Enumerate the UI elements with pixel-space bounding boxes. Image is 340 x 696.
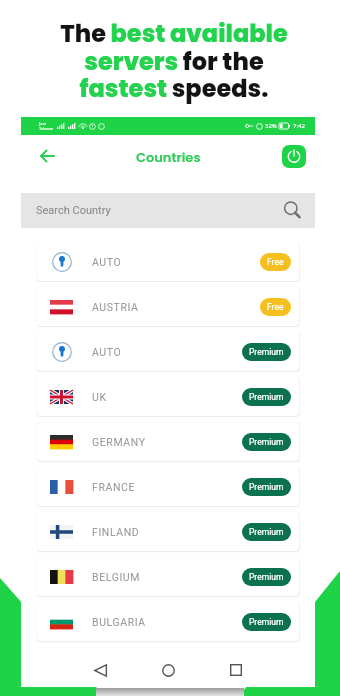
staticText: Jazz [39, 121, 47, 126]
staticText: Premium [249, 482, 284, 492]
button[interactable]: AUTO [37, 332, 299, 371]
staticText: 32% [265, 122, 277, 130]
button[interactable]: AUSTRIA [37, 287, 299, 326]
staticText: Premium [249, 347, 284, 357]
staticText: Premium [249, 527, 284, 537]
button[interactable]: Back [33, 142, 61, 170]
button[interactable]: Recent apps [214, 653, 258, 687]
button[interactable]: GERMANY [37, 422, 299, 461]
button[interactable]: AUTO [37, 242, 299, 281]
staticText: GERMANY [92, 436, 146, 448]
staticText: FRANCE [92, 481, 136, 493]
staticText: UK [92, 391, 107, 403]
staticText: Premium [249, 392, 284, 402]
staticText: Countries [136, 148, 201, 166]
button[interactable]: Home [146, 653, 190, 687]
staticText: Telenor [39, 126, 54, 131]
button[interactable]: FINLAND [37, 512, 299, 551]
staticText: Free [267, 302, 284, 312]
staticText: 7:42 [293, 122, 305, 130]
staticText: AUTO [92, 256, 122, 268]
staticText: BELGIUM [92, 571, 141, 583]
button[interactable]: Power [282, 145, 306, 168]
button[interactable]: Back [78, 653, 122, 687]
staticText: The best available servers for the faste… [60, 17, 288, 106]
staticText: Premium [249, 437, 284, 447]
button[interactable]: BELGIUM [37, 557, 299, 596]
button[interactable]: BULGARIA [37, 602, 299, 641]
button[interactable]: Search [283, 201, 303, 221]
staticText: AUSTRIA [92, 301, 139, 313]
button[interactable]: FRANCE [37, 467, 299, 506]
staticText: Premium [249, 572, 284, 582]
staticText: Search Country [36, 204, 111, 217]
staticText: AUTO [92, 346, 122, 358]
staticText: Premium [249, 617, 284, 627]
button[interactable]: UK [37, 377, 299, 416]
staticText: Free [267, 257, 284, 267]
staticText: FINLAND [92, 526, 140, 538]
staticText: BULGARIA [92, 616, 146, 628]
